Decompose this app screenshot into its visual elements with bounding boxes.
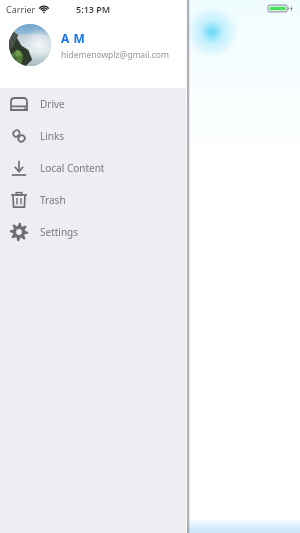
other: Trash (9, 190, 29, 210)
button[interactable]: Settings (0, 216, 186, 248)
other: Links (9, 126, 29, 146)
staticText: Settings (40, 225, 79, 239)
button[interactable]: A M (0, 24, 186, 66)
button[interactable]: Local Content (0, 152, 186, 184)
other: Settings (9, 222, 29, 242)
staticText: Carrier (6, 3, 36, 15)
button[interactable]: Drive (0, 88, 186, 120)
staticText: Links (40, 129, 65, 143)
button[interactable]: Trash (0, 184, 186, 216)
other: Drive (9, 94, 29, 114)
other: Local Content (9, 158, 29, 178)
staticText: Trash (40, 193, 66, 207)
staticText: Drive (40, 97, 65, 111)
staticText: 5:13 PM (76, 3, 111, 15)
staticText: Local Content (40, 161, 105, 175)
button[interactable]: Links (0, 120, 186, 152)
staticText: A M (61, 30, 86, 46)
staticText: hidemenowplz@gmail.com (61, 49, 169, 61)
